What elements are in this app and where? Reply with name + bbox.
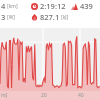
button[interactable]: 4 <box>1 1 99 22</box>
staticText: [kJ] <box>61 14 69 21</box>
other: Elapsed time <box>31 3 38 10</box>
other: Elevation gain <box>71 3 78 10</box>
button[interactable]: Power chart <box>0 28 100 91</box>
staticText: 20 <box>41 92 47 99</box>
staticText: 40 <box>78 92 84 99</box>
staticText: [W] <box>7 14 15 21</box>
staticText: 4 <box>1 1 6 11</box>
staticText: 2:19:12 <box>40 1 66 11</box>
staticText: 827.1 <box>40 12 60 22</box>
other: Energy burned <box>31 14 38 21</box>
staticText: 439 <box>80 1 93 11</box>
staticText: [km] <box>7 3 18 10</box>
staticText: m] <box>1 92 8 99</box>
staticText: 3 <box>1 12 6 22</box>
